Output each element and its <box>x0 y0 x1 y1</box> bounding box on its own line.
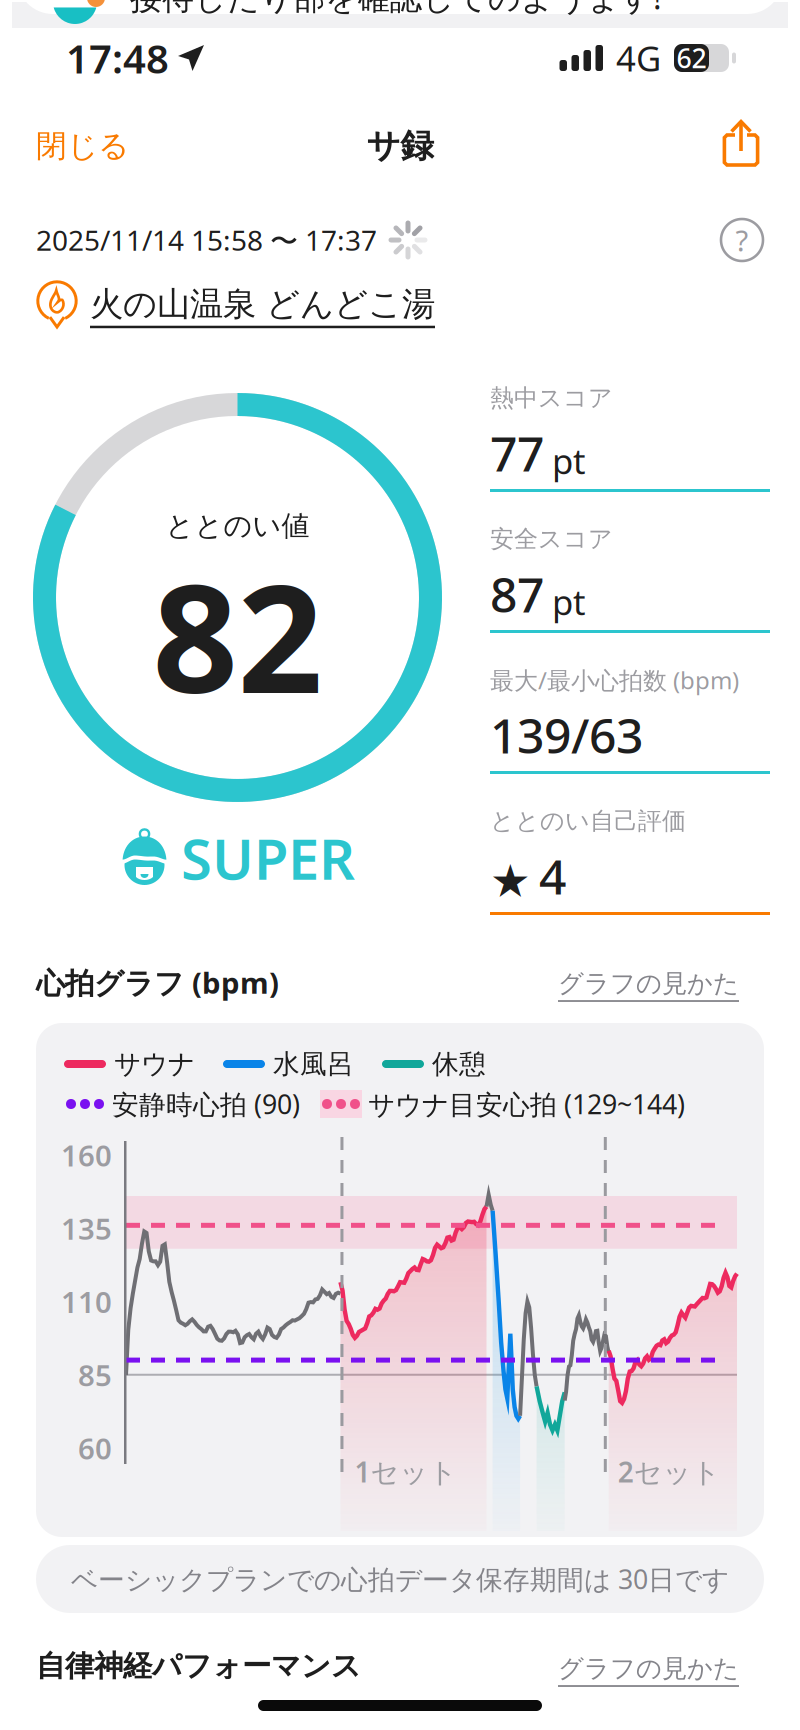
staticText: サ録 <box>366 125 433 166</box>
staticText: ? <box>735 220 748 259</box>
staticText: SUPER <box>181 821 355 895</box>
staticText: ★ <box>490 855 531 907</box>
staticText: 2025/11/14 15:58 〜 17:37 <box>36 221 377 259</box>
button[interactable]: グラフの見かた <box>558 968 739 1002</box>
staticText: グラフの見かた <box>558 1653 739 1684</box>
staticText: サウナ <box>114 1048 195 1080</box>
staticText: 4G <box>616 35 661 81</box>
staticText: ベーシックプランでの心拍データ保存期間は 30日です <box>71 1561 729 1597</box>
staticText: 安静時心拍 (90) <box>112 1086 300 1122</box>
staticText: 自律神経パフォーマンス <box>36 1648 361 1684</box>
staticText: 2セット <box>618 1453 721 1490</box>
staticText: 最大/最小心拍数 (bpm) <box>490 664 739 696</box>
staticText: 160 <box>61 1135 112 1174</box>
staticText: 60 <box>78 1428 112 1467</box>
staticText: 心拍グラフ (bpm) <box>36 963 279 1002</box>
button[interactable]: 火の山温泉 どんどこ湯 <box>36 278 764 334</box>
staticText: 火の山温泉 どんどこ湯 <box>90 284 435 325</box>
staticText: 62 <box>676 40 706 76</box>
staticText: 熱中スコア <box>490 383 613 413</box>
staticText: ととのい自己評価 <box>490 806 686 836</box>
staticText: 閉じる <box>36 127 129 165</box>
button[interactable]: 閉じる <box>36 118 186 174</box>
staticText: 安全スコア <box>490 524 613 554</box>
staticText: 110 <box>61 1282 112 1321</box>
staticText: ととのい値 <box>165 509 309 543</box>
staticText: 1セット <box>354 1453 457 1490</box>
staticText: 17:48 <box>66 31 169 84</box>
staticText: 85 <box>78 1355 112 1394</box>
button[interactable]: ヘルプ <box>720 218 764 262</box>
button[interactable]: グラフの見かた <box>558 1653 739 1687</box>
button[interactable]: 共有 <box>713 115 769 171</box>
staticText: グラフの見かた <box>558 968 739 999</box>
staticText: 水風呂 <box>273 1048 354 1080</box>
staticText: 139/63 <box>490 703 643 767</box>
staticText: 接待したり部を確認してのようます! <box>130 0 662 18</box>
staticText: 4 <box>539 844 566 908</box>
staticText: 休憩 <box>432 1048 486 1080</box>
staticText: 87 <box>490 562 544 626</box>
staticText: 135 <box>61 1209 112 1248</box>
staticText: 77 <box>490 421 544 485</box>
staticText: サウナ目安心拍 (129~144) <box>368 1086 685 1122</box>
staticText: pt <box>552 579 586 625</box>
staticText: 82 <box>152 536 322 734</box>
staticText: pt <box>552 438 586 484</box>
